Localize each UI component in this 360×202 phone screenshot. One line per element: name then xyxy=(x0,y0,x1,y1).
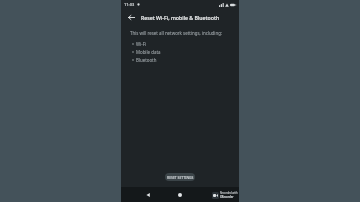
staticText: XRecorder xyxy=(220,195,234,199)
button[interactable]: Home xyxy=(174,189,186,201)
button[interactable]: Back xyxy=(125,11,137,23)
button[interactable]: Back xyxy=(142,189,154,201)
staticText: Wi-Fi xyxy=(136,41,147,47)
staticText: 11:03 xyxy=(124,2,135,7)
staticText: Bluetooth xyxy=(136,57,157,63)
button[interactable]: Recents xyxy=(207,189,219,201)
staticText: Recorded with xyxy=(220,191,238,195)
button[interactable]: RESET SETTINGS xyxy=(165,173,195,181)
staticText: Mobile data xyxy=(136,49,161,55)
staticText: Reset Wi-Fi, mobile & Bluetooth xyxy=(141,14,220,21)
staticText: This will reset all network settings, in… xyxy=(130,30,223,36)
staticText: RESET SETTINGS xyxy=(167,175,194,180)
